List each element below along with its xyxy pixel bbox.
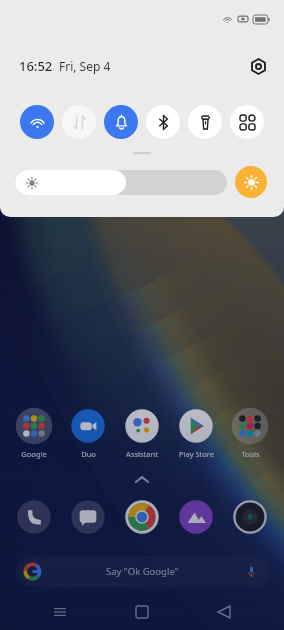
button[interactable]: Play Store: [177, 407, 215, 459]
button[interactable]: Auto brightness: [235, 166, 267, 198]
button[interactable]: Google: [15, 407, 53, 459]
staticText: 16:52: [19, 57, 53, 75]
button[interactable]: Home: [120, 596, 164, 628]
staticText: Play Store: [179, 449, 214, 459]
button[interactable]: Tools: [231, 407, 269, 459]
button[interactable]: Sound: [104, 105, 138, 139]
staticText: Tools: [241, 449, 260, 459]
button[interactable]: Assistant: [123, 407, 161, 459]
button[interactable]: Bluetooth: [146, 105, 180, 139]
staticText: Google: [21, 449, 47, 459]
button[interactable]: Camera: [231, 498, 269, 536]
staticText: Say "Ok Google": [106, 565, 179, 578]
button[interactable]: Flashlight: [188, 105, 222, 139]
button[interactable]: Say "Ok Google": [16, 556, 269, 587]
staticText: Duo: [81, 449, 96, 459]
button[interactable]: Data saver: [62, 105, 96, 139]
button[interactable]: [15, 170, 227, 195]
button[interactable]: Duo: [69, 407, 107, 459]
button[interactable]: Back: [202, 596, 246, 628]
button[interactable]: Phone: [15, 498, 53, 536]
button[interactable]: Open app drawer: [131, 468, 153, 490]
button[interactable]: Messages: [69, 498, 107, 536]
button[interactable]: Settings: [246, 54, 270, 78]
button[interactable]: Recents: [38, 596, 82, 628]
staticText: Fri, Sep 4: [59, 58, 111, 74]
button[interactable]: Wi-Fi: [20, 105, 54, 139]
button[interactable]: Chrome: [123, 498, 161, 536]
button[interactable]: Photos: [177, 498, 215, 536]
staticText: Assistant: [126, 449, 158, 459]
button[interactable]: More: [230, 105, 264, 139]
